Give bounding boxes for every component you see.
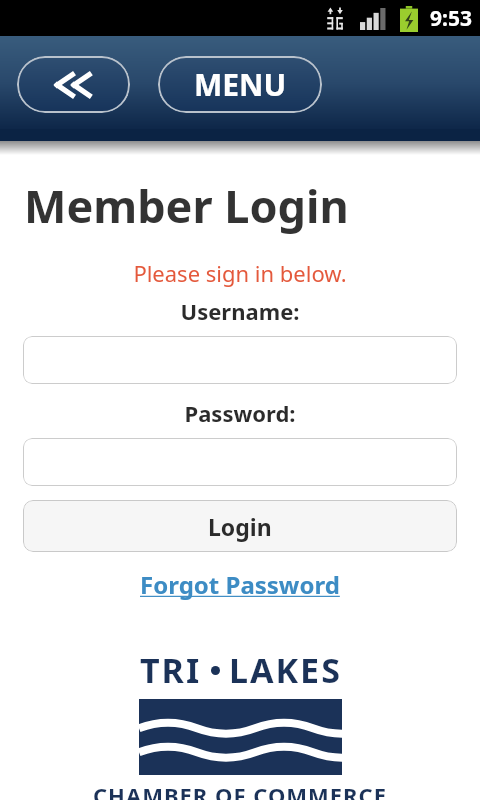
button[interactable] [23, 336, 457, 384]
staticText: Please sign in below. [0, 258, 480, 288]
staticText: LAKES [229, 647, 342, 693]
staticText: MENU [194, 64, 287, 105]
staticText: 9:53 [430, 4, 472, 33]
button[interactable]: Back [17, 56, 130, 113]
staticText: Password: [0, 398, 480, 428]
staticText: Login [208, 511, 272, 542]
staticText: Username: [0, 296, 480, 326]
button[interactable] [23, 438, 457, 486]
staticText: TRI [140, 647, 202, 693]
button[interactable]: Forgot Password [134, 566, 346, 603]
staticText: Member Login [24, 175, 349, 236]
button[interactable]: Login [23, 500, 457, 552]
staticText: Forgot Password [140, 568, 340, 601]
button[interactable]: MENU [158, 56, 322, 113]
staticText: CHAMBER OF COMMERCE [93, 780, 388, 800]
